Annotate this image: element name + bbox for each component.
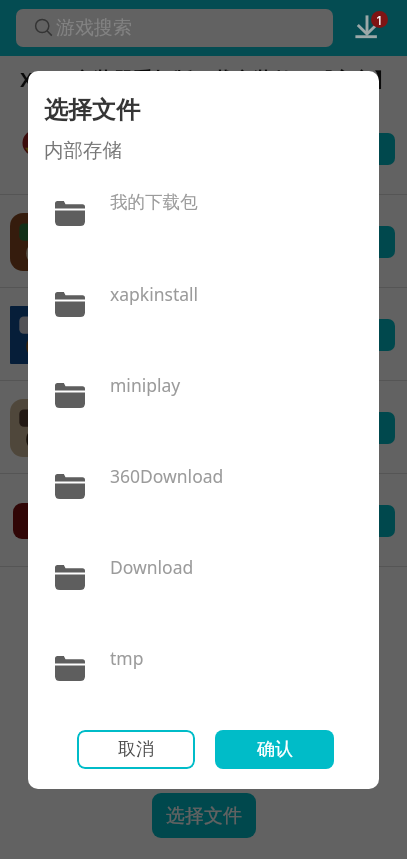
staticText: 选择文件 [166, 804, 242, 828]
staticText: 选择文件 [44, 95, 140, 125]
staticText: 萌宠日记 [80, 404, 148, 425]
button[interactable]: tmp [28, 645, 379, 736]
staticText: 内部存储 [44, 138, 122, 163]
staticText: 1 [376, 12, 383, 28]
staticText: tmp [110, 646, 144, 670]
staticText: XAPK安装器手机版下载安装教程【官方】 [20, 66, 393, 93]
staticText: xapkinstall [110, 282, 199, 306]
staticText: 72.4MB [80, 154, 127, 172]
button[interactable]: 我的下载包 [28, 190, 379, 281]
button[interactable]: 360Download [28, 463, 379, 554]
button[interactable]: xapkinstall [28, 281, 379, 372]
staticText: 我的下载包 [110, 191, 198, 213]
staticText: miniplay [110, 373, 181, 397]
staticText: 确认 [257, 738, 293, 761]
staticText: Download [110, 555, 194, 579]
button[interactable]: 游戏搜索 [16, 9, 333, 47]
staticText: 王者传奇 [80, 218, 148, 239]
staticText: 热血江湖 [80, 125, 148, 146]
button[interactable]: 确认 [215, 730, 334, 769]
staticText: 游戏搜索 [56, 16, 132, 40]
staticText: 烈焰战神 [80, 497, 148, 518]
button[interactable]: Downloads [350, 8, 392, 48]
button[interactable]: 下载 [329, 412, 395, 444]
button[interactable]: 取消 [77, 730, 195, 769]
button[interactable]: miniplay [28, 372, 379, 463]
button[interactable]: 选择文件 [152, 793, 256, 838]
button[interactable]: 下载 [329, 226, 395, 258]
button[interactable]: 下载 [329, 505, 395, 537]
button[interactable]: 下载 [329, 319, 395, 351]
button[interactable]: Download [28, 554, 379, 645]
staticText: 取消 [118, 738, 154, 761]
staticText: 360Download [110, 464, 224, 488]
staticText: 美食大亨 [80, 311, 148, 332]
button[interactable]: 下载 [329, 133, 395, 165]
